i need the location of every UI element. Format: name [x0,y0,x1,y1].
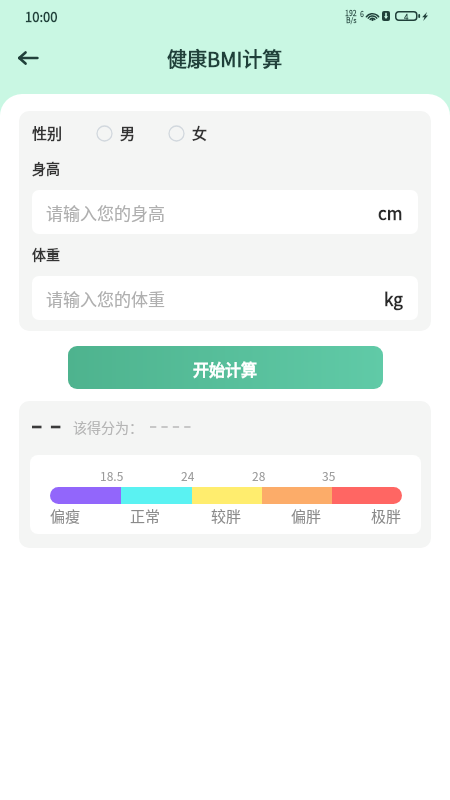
staticText: 192 [345,8,357,18]
staticText: 男 [120,122,136,144]
staticText: 请输入您的体重 [46,286,165,311]
staticText: 10:00 [25,7,58,26]
staticText: 偏胖 [291,505,322,527]
staticText: 4 [404,11,409,23]
staticText: 偏瘦 [50,505,81,527]
staticText: kg [384,286,403,311]
staticText: 该得分为： [73,417,143,437]
button[interactable]: 开始计算 [68,346,383,389]
button[interactable]: 男 [96,122,136,144]
staticText: 请输入您的身高 [46,200,165,225]
staticText: 女 [192,122,208,144]
staticText: 6 [360,9,364,19]
button[interactable]: Back [8,38,48,78]
staticText: 24 [181,467,195,484]
staticText: 28 [252,467,266,484]
staticText: 较胖 [211,505,242,527]
staticText: 健康BMI计算 [167,44,283,73]
staticText: 极胖 [371,505,402,527]
button[interactable]: 请输入您的体重 [32,276,418,320]
button[interactable]: 请输入您的身高 [32,190,418,234]
staticText: 身高 [32,158,60,178]
staticText: 性别 [32,122,63,144]
staticText: 正常 [130,505,161,527]
staticText: 35 [322,467,336,484]
staticText: 体重 [32,244,60,264]
staticText: 18.5 [100,467,124,484]
staticText: 开始计算 [193,357,258,380]
button[interactable]: 女 [168,122,208,144]
staticText: cm [378,200,403,225]
staticText: B/s [346,15,357,25]
